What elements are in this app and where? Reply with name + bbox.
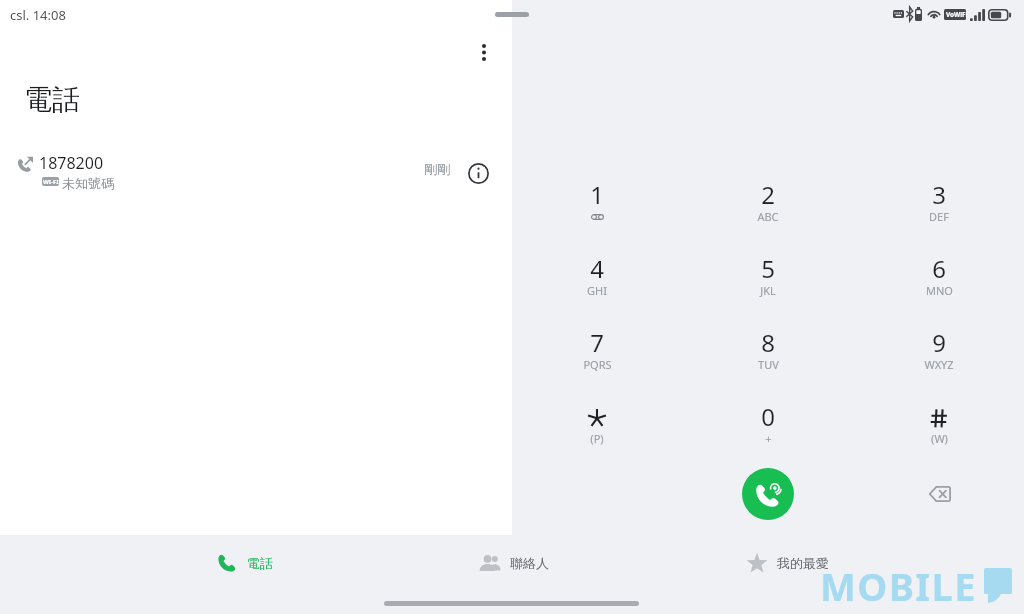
staticText: WXYZ (924, 357, 954, 372)
staticText: VoWiFi (946, 10, 968, 19)
staticText: 8 (761, 326, 775, 359)
button[interactable]: 電話 (198, 544, 291, 582)
staticText: 1 (590, 178, 604, 211)
button[interactable]: (W) (893, 392, 985, 458)
staticText: 未知號碼 (62, 175, 114, 191)
staticText: 7 (590, 326, 604, 359)
button[interactable]: 5 (722, 244, 814, 310)
button[interactable]: Call details (460, 155, 496, 191)
button[interactable]: Backspace (917, 472, 961, 516)
staticText: 9 (932, 326, 946, 359)
button[interactable]: 8 (722, 318, 814, 384)
staticText: 0 (761, 400, 775, 433)
button[interactable]: 聯絡人 (461, 544, 567, 582)
button[interactable]: 0 (722, 392, 814, 458)
staticText: 4 (590, 252, 604, 285)
button[interactable]: 3 (893, 170, 985, 236)
staticText: + (765, 431, 772, 446)
button[interactable]: (P) (551, 392, 643, 458)
staticText: WI-FI (43, 178, 59, 186)
staticText: 電話 (247, 555, 273, 571)
staticText: 聯絡人 (510, 555, 549, 571)
staticText: (P) (590, 431, 604, 446)
staticText: DEF (929, 209, 949, 224)
button[interactable]: More options (462, 30, 506, 74)
staticText: 1878200 (39, 152, 104, 174)
staticText: JKL (760, 283, 776, 298)
button[interactable]: 1878200 (0, 147, 512, 199)
button[interactable]: 1 (551, 170, 643, 236)
staticText: csl. 14:08 (10, 6, 66, 24)
staticText: 我的最愛 (777, 555, 829, 571)
button[interactable]: 2 (722, 170, 814, 236)
staticText: 6 (932, 252, 946, 285)
button[interactable]: 6 (893, 244, 985, 310)
button[interactable]: 7 (551, 318, 643, 384)
staticText: 剛剛 (424, 161, 450, 177)
staticText: 3 (932, 178, 946, 211)
staticText: 5 (761, 252, 775, 285)
staticText: TUV (758, 357, 779, 372)
staticText: ABC (757, 209, 779, 224)
staticText: MOBILE (820, 560, 977, 612)
button[interactable]: 9 (893, 318, 985, 384)
staticText: 電話 (24, 82, 80, 117)
button[interactable]: 我的最愛 (728, 544, 847, 582)
staticText: GHI (587, 283, 607, 298)
staticText: (W) (931, 431, 948, 446)
button[interactable]: 4 (551, 244, 643, 310)
button[interactable]: Call (742, 468, 794, 520)
staticText: PQRS (583, 357, 612, 372)
staticText: 2 (761, 178, 775, 211)
staticText: MNO (926, 283, 953, 298)
